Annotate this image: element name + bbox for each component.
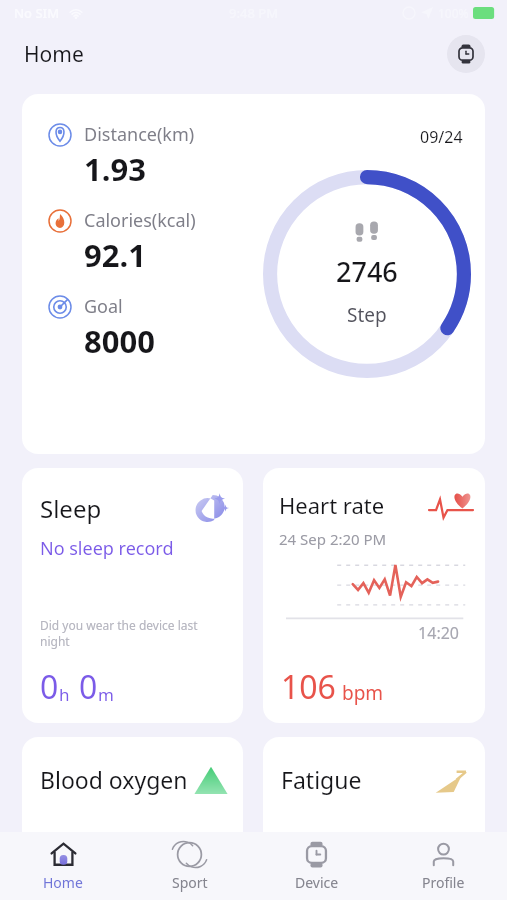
staticText: Calories(kcal) [84,208,196,233]
staticText: Heart rate [279,490,385,520]
staticText: Step [347,302,387,328]
staticText: 2746 [336,253,398,290]
staticText: Blood oxygen [40,764,188,795]
staticText: 106 [281,665,336,709]
staticText: Home [24,40,84,69]
staticText: Distance(km) [84,122,195,147]
staticText: Home [43,873,83,892]
staticText: 14:20 [279,622,459,644]
staticText: Sleep [40,492,102,525]
button[interactable]: Sleep [22,468,243,723]
staticText: 92.1 [84,234,146,276]
staticText: Goal [84,294,123,319]
button[interactable]: Device [253,832,380,900]
staticText: Did you wear the device last night [40,617,229,649]
staticText: 09/24 [420,126,463,148]
staticText: 8000 [84,320,155,362]
staticText: Sport [172,873,208,892]
staticText: 0 [40,665,59,709]
button[interactable]: Blood oxygen [22,737,243,857]
staticText: 1.93 [84,148,146,190]
staticText: m [98,683,114,706]
button[interactable]: Home [0,832,126,900]
staticText: h [59,683,70,706]
button[interactable]: Sport [126,832,253,900]
staticText: 24 Sep 2:20 PM [279,529,387,549]
staticText: Profile [422,873,465,892]
staticText: Device [295,873,339,892]
staticText: Fatigue [281,764,362,795]
button[interactable]: Profile [380,832,507,900]
button[interactable]: My device [447,35,485,73]
button[interactable]: Fatigue [263,737,485,857]
staticText: bpm [342,680,384,706]
staticText: No SIM [14,4,60,22]
button[interactable]: 09/24 [22,94,485,454]
staticText: No sleep record [40,536,174,561]
staticText: 0 [79,665,98,709]
button[interactable]: Heart rate [263,468,485,723]
